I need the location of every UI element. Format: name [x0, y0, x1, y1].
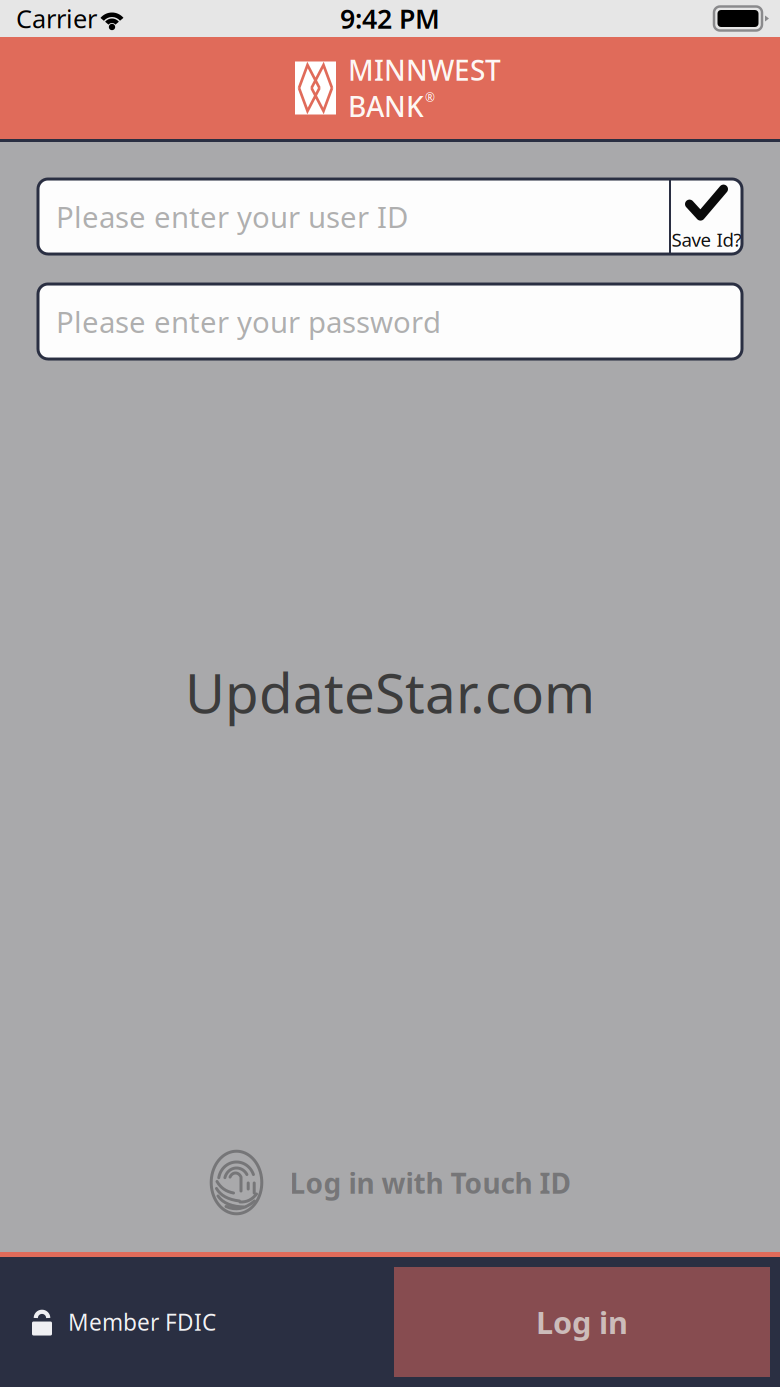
staticText: BANK: [348, 87, 424, 125]
staticText: ®: [425, 89, 435, 105]
staticText: Member FDIC: [68, 1307, 216, 1337]
button[interactable]: Please enter your password: [38, 284, 742, 359]
button[interactable]: Please enter your user ID: [38, 179, 669, 254]
staticText: UpdateStar.com: [185, 656, 595, 728]
staticText: Carrier: [16, 2, 97, 35]
staticText: Save Id?: [671, 227, 741, 252]
staticText: Please enter your password: [56, 302, 441, 341]
button[interactable]: Log in with Touch ID: [201, 1142, 578, 1224]
button[interactable]: Save Id?: [671, 179, 742, 254]
staticText: MINNWEST: [348, 51, 501, 88]
staticText: Log in: [536, 1302, 628, 1342]
button[interactable]: Log in: [394, 1267, 770, 1377]
staticText: 9:42 PM: [340, 1, 440, 36]
staticText: Please enter your user ID: [56, 197, 408, 236]
staticText: Log in with Touch ID: [289, 1164, 570, 1202]
